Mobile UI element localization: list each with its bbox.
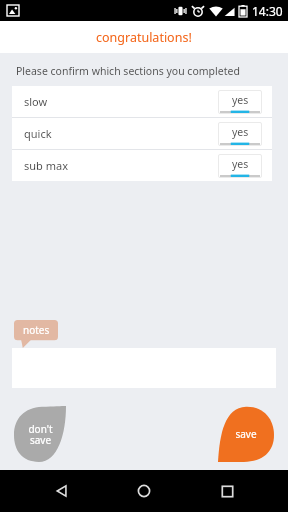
staticText: don't save — [28, 422, 53, 447]
button[interactable]: yes — [218, 122, 262, 146]
staticText: yes — [232, 93, 249, 107]
button[interactable]: save — [218, 406, 274, 462]
staticText: 14:30 — [252, 3, 283, 19]
staticText: sub max — [24, 158, 68, 173]
staticText: yes — [232, 125, 249, 139]
button[interactable]: Home — [123, 470, 165, 512]
button[interactable]: Recent apps — [206, 470, 248, 512]
staticText: quick — [24, 126, 52, 141]
staticText: yes — [232, 157, 249, 171]
staticText: Please confirm which sections you comple… — [16, 64, 240, 78]
button[interactable]: Back — [41, 470, 83, 512]
staticText: slow — [24, 94, 48, 109]
button[interactable]: sub max — [12, 150, 272, 181]
button[interactable]: notes — [14, 320, 58, 348]
button[interactable]: yes — [218, 90, 262, 114]
staticText: congratulations! — [96, 29, 192, 46]
button[interactable]: quick — [12, 118, 272, 149]
staticText: notes — [23, 323, 50, 337]
button[interactable]: slow — [12, 86, 272, 117]
button[interactable]: don't save — [14, 406, 66, 462]
staticText: save — [235, 427, 257, 441]
button[interactable]: yes — [218, 154, 262, 178]
